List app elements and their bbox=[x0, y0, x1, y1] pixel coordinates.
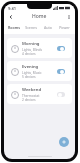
staticText: Lights, Music bbox=[22, 71, 42, 75]
staticText: Rooms bbox=[8, 25, 20, 30]
staticText: Scenes bbox=[25, 25, 37, 30]
staticText: 5 devices bbox=[22, 75, 36, 79]
button[interactable]: More options bbox=[64, 12, 73, 21]
button[interactable]: Toggle Morning bbox=[57, 46, 65, 51]
staticText: Auto bbox=[44, 25, 52, 30]
staticText: Thermostat bbox=[22, 94, 40, 98]
button[interactable]: Scenes bbox=[22, 21, 39, 34]
staticText: 2 devices bbox=[22, 98, 36, 102]
button[interactable]: Power bbox=[56, 21, 73, 34]
staticText: 4 devices bbox=[22, 52, 36, 56]
staticText: Lights, Blinds bbox=[22, 48, 42, 52]
staticText: Home bbox=[32, 13, 47, 20]
staticText: Power bbox=[59, 25, 70, 30]
button[interactable]: Weekend bbox=[7, 84, 72, 104]
button[interactable]: Morning bbox=[7, 38, 72, 58]
button[interactable]: Evening bbox=[7, 61, 72, 81]
button[interactable]: Rooms bbox=[6, 21, 22, 34]
button[interactable]: Toggle Weekend bbox=[57, 92, 65, 97]
button[interactable]: Add scene bbox=[59, 137, 69, 147]
button[interactable]: Toggle Evening bbox=[57, 69, 65, 74]
button[interactable]: Back bbox=[6, 12, 15, 21]
button[interactable]: Auto bbox=[39, 21, 56, 34]
staticText: 9:41 bbox=[8, 6, 16, 11]
staticText: Morning bbox=[22, 41, 40, 47]
staticText: Evening bbox=[22, 64, 39, 70]
staticText: Weekend bbox=[22, 87, 42, 93]
